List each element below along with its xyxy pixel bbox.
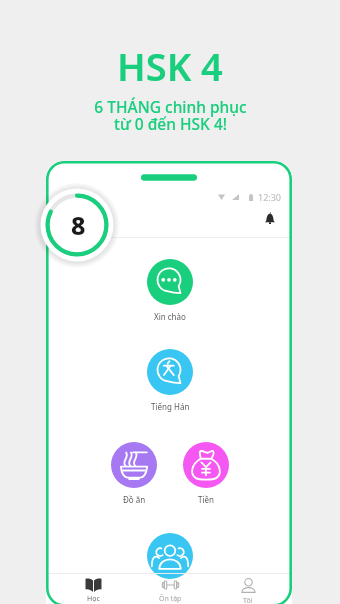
staticText: Ôn tập — [159, 594, 182, 604]
staticText: Tôi — [243, 596, 253, 604]
staticText: 8 — [71, 208, 86, 242]
button[interactable]: Cộng đồng — [130, 533, 210, 579]
staticText: Tiền — [198, 494, 214, 505]
staticText: Đồ ăn — [123, 494, 146, 505]
staticText: 6 THÁNG chinh phục từ 0 đến HSK 4! — [94, 96, 247, 135]
button[interactable]: Ôn tập — [134, 573, 206, 604]
button[interactable]: Đồ ăn — [94, 442, 174, 505]
staticText: HSK 4 — [117, 40, 223, 92]
button[interactable]: Tôi — [212, 573, 284, 604]
staticText: Học — [87, 594, 100, 604]
staticText: Xin chào — [154, 311, 186, 322]
button[interactable]: Tiếng Hán — [130, 349, 210, 412]
button[interactable]: Xin chào — [130, 259, 210, 322]
button[interactable]: Notifications — [259, 207, 281, 229]
staticText: Tiếng Hán — [151, 401, 190, 412]
button[interactable]: Tiền — [166, 442, 246, 505]
staticText: 12:30 — [258, 191, 282, 203]
button[interactable]: Học — [57, 573, 129, 604]
